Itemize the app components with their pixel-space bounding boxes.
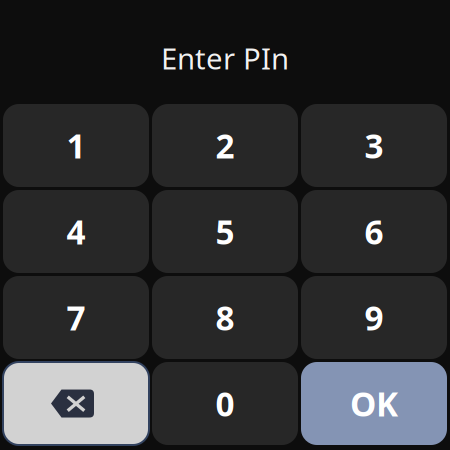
staticText: 9 [364,295,383,340]
staticText: Enter PIn [161,38,289,77]
button[interactable]: 0 [152,362,298,445]
button[interactable]: 6 [301,190,447,273]
staticText: OK [350,381,398,426]
staticText: 4 [66,209,85,254]
button[interactable]: 9 [301,276,447,359]
button[interactable]: Delete [3,362,149,445]
button[interactable]: 2 [152,104,298,187]
staticText: 7 [66,295,85,340]
staticText: 0 [215,381,234,426]
staticText: 2 [215,123,234,168]
button[interactable]: OK [301,362,447,445]
button[interactable]: 3 [301,104,447,187]
button[interactable]: 7 [3,276,149,359]
staticText: 8 [215,295,234,340]
staticText: 1 [66,123,85,168]
button[interactable]: 4 [3,190,149,273]
button[interactable]: 8 [152,276,298,359]
staticText: 5 [215,209,234,254]
staticText: 3 [364,123,383,168]
staticText: 6 [364,209,383,254]
button[interactable]: 1 [3,104,149,187]
button[interactable]: 5 [152,190,298,273]
